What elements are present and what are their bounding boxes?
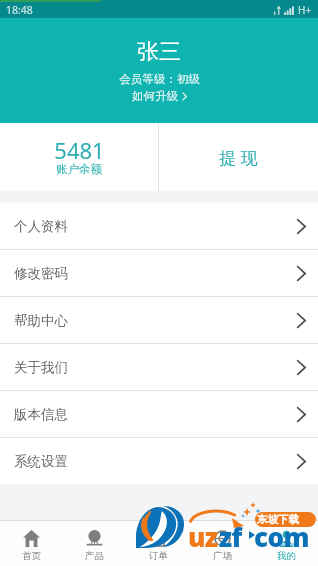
staticText: uz — [188, 519, 218, 554]
button[interactable]: 修改密码 — [0, 250, 318, 296]
staticText: 个人资料 — [14, 218, 68, 235]
staticText: 帮助中心 — [14, 312, 68, 329]
staticText: 提 现 — [219, 146, 258, 169]
button[interactable]: 帮助中心 — [0, 297, 318, 343]
staticText: zf — [219, 519, 242, 554]
staticText: 版本信息 — [14, 406, 68, 423]
button[interactable]: 如何升级 — [132, 89, 187, 103]
staticText: 东坡下载 — [257, 513, 299, 526]
staticText: 修改密码 — [14, 265, 68, 282]
staticText: com — [254, 519, 309, 554]
staticText: 产品 — [85, 550, 104, 562]
button[interactable]: 系统设置 — [0, 438, 318, 484]
staticText: 广场 — [213, 550, 232, 562]
staticText: 账户余额 — [56, 162, 102, 176]
staticText: 系统设置 — [14, 453, 68, 470]
button[interactable]: 版本信息 — [0, 391, 318, 437]
button[interactable]: 我的 — [254, 521, 318, 566]
staticText: H+ — [298, 3, 312, 17]
button[interactable]: 广场 — [190, 521, 254, 566]
staticText: 如何升级 — [132, 89, 178, 103]
button[interactable]: 首页 — [0, 521, 63, 566]
staticText: 关于我们 — [14, 359, 68, 376]
staticText: 18:48 — [6, 3, 33, 17]
button[interactable]: 订单 — [126, 521, 190, 566]
staticText: 5481 — [54, 135, 105, 165]
staticText: 订单 — [149, 550, 168, 562]
staticText: 首页 — [22, 550, 41, 562]
button[interactable]: 5481 — [0, 123, 158, 191]
button[interactable]: 个人资料 — [0, 203, 318, 249]
staticText: 我的 — [277, 550, 296, 562]
button[interactable]: 提 现 — [159, 123, 318, 191]
button[interactable]: 产品 — [63, 521, 126, 566]
staticText: 张三 — [137, 38, 181, 66]
button[interactable]: 关于我们 — [0, 344, 318, 390]
staticText: 会员等级：初级 — [119, 72, 200, 86]
